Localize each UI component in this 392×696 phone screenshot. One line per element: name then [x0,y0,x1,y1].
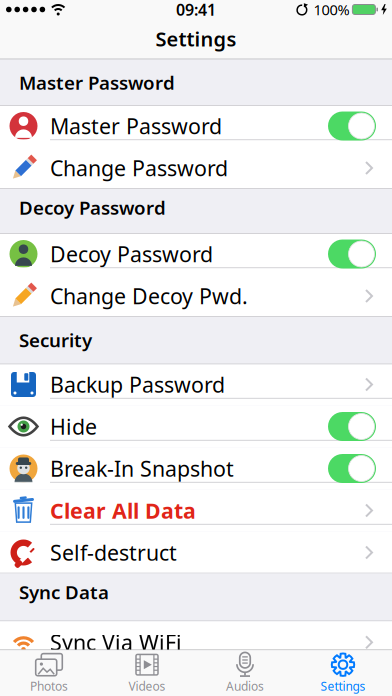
staticText: Sync Data [19,580,109,604]
button[interactable]: Clear All Data [0,489,392,531]
button[interactable]: Audios [196,651,294,695]
button[interactable]: Settings [294,651,392,695]
staticText: Master Password [50,112,222,140]
staticText: Self-destruct [50,538,177,567]
staticText: Photos [30,678,68,694]
button[interactable]: Break-In Snapshot [328,454,376,483]
staticText: Change Password [50,154,228,182]
staticText: 100% [313,0,349,19]
button[interactable]: Self-destruct [0,531,392,573]
staticText: Master Password [19,70,175,95]
button[interactable]: Photos [0,651,98,695]
button[interactable]: Hide [328,412,376,441]
staticText: Sync Via WiFi [50,628,182,656]
button[interactable]: Backup Password [0,363,392,405]
button[interactable]: Decoy Password [328,239,376,268]
staticText: Backup Password [50,370,225,399]
staticText: Decoy Password [19,195,166,220]
staticText: Clear All Data [50,496,196,525]
button[interactable]: Videos [98,651,196,695]
button[interactable]: Sync Via WiFi [0,621,392,663]
staticText: Settings [320,678,365,694]
staticText: 09:41 [176,0,216,20]
staticText: Change Decoy Pwd. [50,282,248,310]
button[interactable]: Change Decoy Pwd. [0,275,392,317]
staticText: Security [19,328,92,352]
staticText: Hide [50,412,97,441]
staticText: Settings [155,26,236,52]
staticText: Audios [226,678,264,694]
staticText: Decoy Password [50,240,213,268]
staticText: Videos [128,678,165,694]
staticText: Break-In Snapshot [50,454,234,483]
button[interactable]: Change Password [0,147,392,189]
button[interactable]: Master Password [328,111,376,140]
